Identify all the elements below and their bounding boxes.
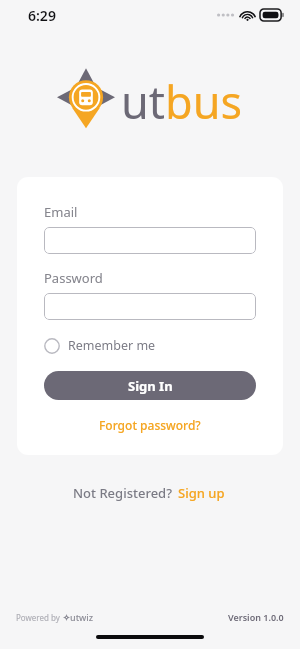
- staticText: Powered by: [16, 612, 60, 623]
- staticText: Sign In: [128, 377, 173, 395]
- button[interactable]: Sign up: [176, 482, 227, 504]
- button[interactable]: Forgot password?: [93, 415, 207, 435]
- staticText: Not Registered?: [73, 484, 172, 502]
- staticText: Password: [44, 269, 103, 287]
- staticText: 6:29: [28, 6, 56, 25]
- button[interactable]: Sign In: [44, 371, 256, 400]
- button[interactable]: Remember me: [44, 337, 156, 354]
- button[interactable]: [44, 293, 256, 320]
- staticText: Email: [44, 203, 78, 221]
- staticText: Version 1.0.0: [228, 611, 284, 623]
- staticText: Remember me: [68, 337, 156, 354]
- staticText: utwiz: [70, 611, 94, 623]
- button[interactable]: [44, 227, 256, 254]
- staticText: utbus: [121, 71, 243, 132]
